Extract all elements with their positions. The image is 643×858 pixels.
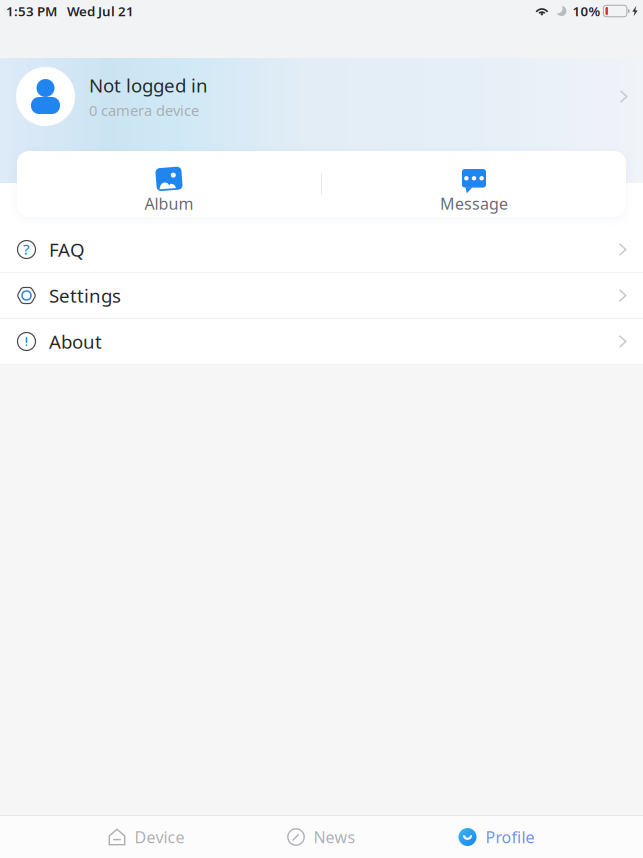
button[interactable]: Device [59, 816, 234, 858]
button[interactable]: Settings [0, 273, 643, 318]
staticText: Message [440, 193, 508, 214]
button[interactable]: Message [322, 151, 626, 217]
button[interactable]: Profile [409, 816, 584, 858]
button[interactable]: About [0, 319, 643, 364]
staticText: 1:53 PM [6, 2, 57, 20]
staticText: 10% [572, 2, 600, 20]
staticText: Wed Jul 21 [67, 2, 134, 20]
button[interactable]: ? [0, 227, 643, 272]
staticText: FAQ [49, 237, 85, 262]
button[interactable]: Album [17, 151, 321, 217]
staticText: Settings [49, 283, 121, 308]
staticText: Album [144, 193, 193, 214]
staticText: Profile [485, 826, 534, 848]
staticText: Not logged in [89, 73, 208, 98]
staticText: 0 camera device [89, 101, 199, 120]
staticText: News [313, 826, 355, 848]
button[interactable]: News [234, 816, 409, 858]
button[interactable]: Not logged in [0, 67, 643, 126]
staticText: Device [134, 826, 184, 848]
staticText: ? [23, 239, 30, 259]
staticText: About [49, 329, 102, 354]
